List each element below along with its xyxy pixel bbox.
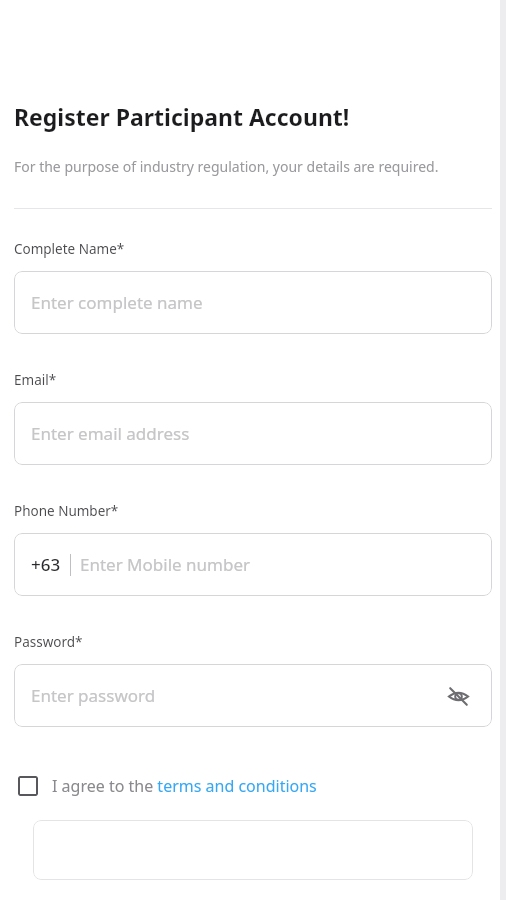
staticText: Password* xyxy=(14,633,83,651)
button[interactable]: I agree to the terms and conditions xyxy=(14,775,492,797)
staticText: Enter complete name xyxy=(31,291,203,314)
button[interactable] xyxy=(33,820,473,880)
staticText: Enter email address xyxy=(31,422,190,445)
button[interactable]: Enter complete name xyxy=(14,271,492,334)
button[interactable]: Show password xyxy=(445,683,471,709)
button[interactable]: Enter password xyxy=(14,664,492,727)
staticText: Enter password xyxy=(31,684,156,707)
staticText: Phone Number* xyxy=(14,502,119,520)
button[interactable]: +63 xyxy=(14,533,492,596)
staticText: Enter Mobile number xyxy=(80,553,251,576)
staticText: Complete Name* xyxy=(14,240,125,258)
staticText: Register Participant Account! xyxy=(14,101,350,132)
staticText: For the purpose of industry regulation, … xyxy=(14,157,439,176)
button[interactable]: Enter email address xyxy=(14,402,492,465)
staticText: I agree to the terms and conditions xyxy=(52,775,317,797)
staticText: Email* xyxy=(14,371,57,389)
staticText: +63 xyxy=(31,553,61,576)
